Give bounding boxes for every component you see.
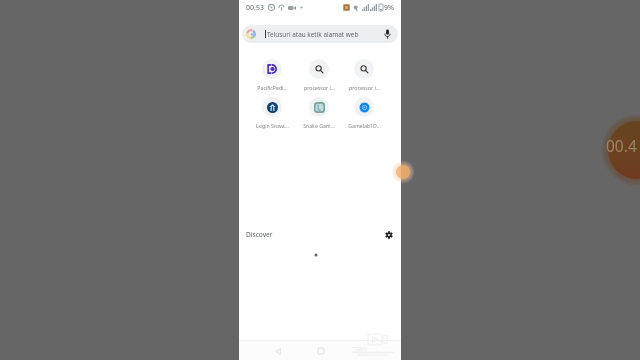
staticText: 00.53	[246, 3, 264, 13]
staticText: Gamelab1D...	[348, 122, 381, 129]
staticText: processor i...	[304, 84, 335, 91]
button[interactable]: Discover settings	[382, 228, 395, 241]
button[interactable]: Gamelab1D...	[341, 97, 387, 129]
button[interactable]: Login Siswa...	[249, 97, 295, 129]
button[interactable]: Snake Gam...	[296, 97, 342, 129]
staticText: Telusuri atau ketik alamat web	[267, 30, 359, 39]
staticText: Snake Gam...	[303, 122, 335, 129]
button[interactable]: Telusuri atau ketik alamat web	[242, 25, 398, 43]
staticText: Discover	[246, 230, 273, 239]
button[interactable]: processor i...	[341, 59, 387, 91]
staticText: processor i...	[349, 84, 380, 91]
button[interactable]: Back	[269, 342, 287, 360]
button[interactable]: processor i...	[296, 59, 342, 91]
staticText: Login Siswa...	[256, 122, 289, 129]
button[interactable]: PacificPedi...	[249, 59, 295, 91]
staticText: PacificPedi...	[257, 84, 288, 91]
button[interactable]: Recent apps	[353, 342, 371, 360]
button[interactable]: Home	[312, 342, 330, 360]
staticText: 00.4	[606, 135, 637, 156]
staticText: 9%	[384, 3, 394, 13]
